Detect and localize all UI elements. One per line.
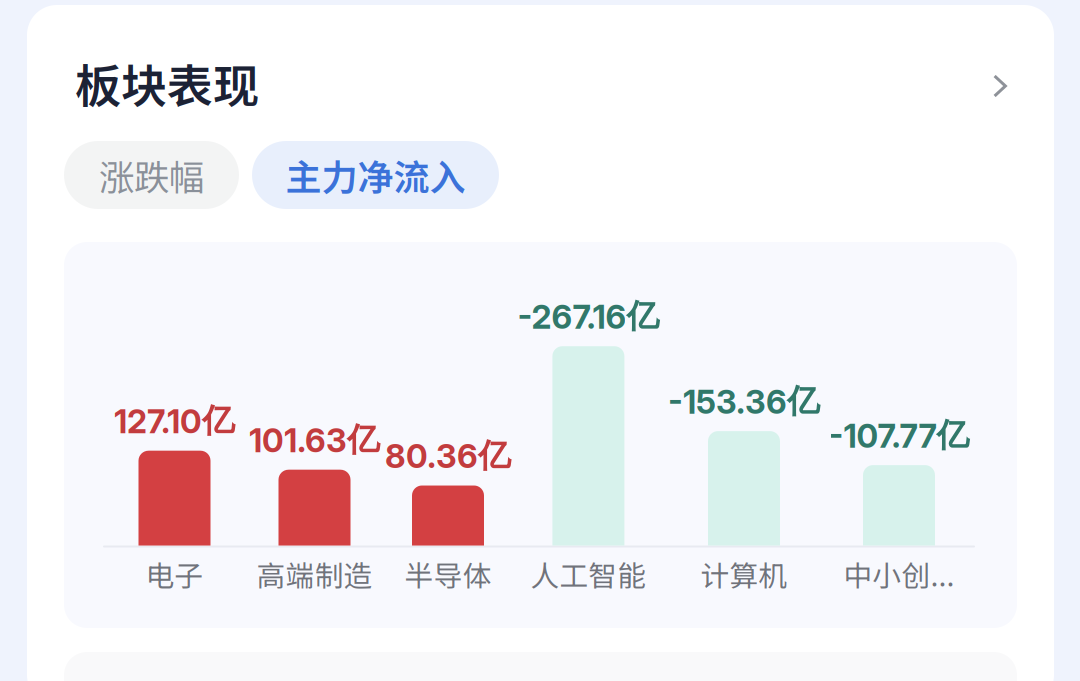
button[interactable]: 板块表现，查看全部 (75, 45, 1007, 121)
staticText: 127.10亿 (114, 400, 235, 441)
button[interactable]: 涨跌幅 (64, 141, 239, 209)
staticText: 半导体 (404, 553, 491, 595)
staticText: 中小创... (843, 553, 954, 595)
staticText: -107.77亿 (828, 414, 969, 456)
button[interactable]: 主力净流入 (252, 141, 499, 209)
staticText: 电子 (145, 553, 203, 595)
staticText: -153.36亿 (668, 380, 820, 422)
staticText: 80.36亿 (385, 435, 511, 476)
staticText: 计算机 (700, 553, 787, 595)
staticText: 人工智能 (530, 553, 646, 595)
staticText: 高端制造 (256, 553, 372, 595)
staticText: 主力净流入 (285, 149, 465, 201)
staticText: 101.63亿 (249, 419, 380, 460)
staticText: -267.16亿 (517, 296, 659, 337)
staticText: 板块表现 (75, 50, 259, 116)
staticText: 涨跌幅 (99, 149, 204, 201)
